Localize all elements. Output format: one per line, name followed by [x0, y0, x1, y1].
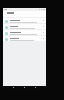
button[interactable]	[3, 24, 46, 30]
button[interactable]	[3, 30, 46, 36]
button[interactable]	[3, 18, 46, 24]
button[interactable]	[3, 36, 46, 42]
